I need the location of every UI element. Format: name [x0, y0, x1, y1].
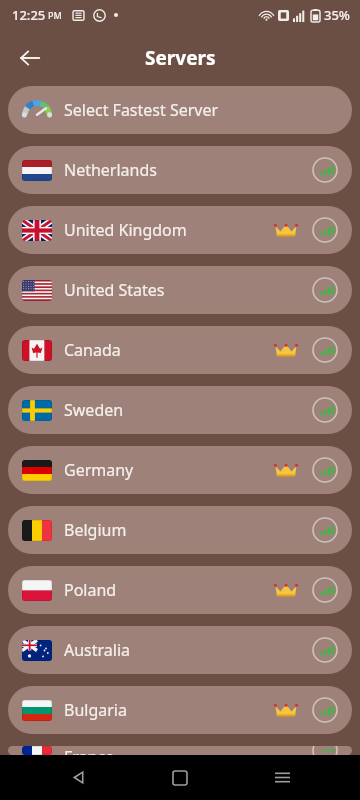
staticText: Sweden — [64, 399, 124, 421]
button[interactable]: Belgium — [8, 506, 352, 554]
staticText: United States — [64, 279, 165, 301]
staticText: United Kingdom — [64, 219, 187, 241]
button[interactable]: Bulgaria — [8, 686, 352, 734]
button[interactable]: Select Fastest Server — [8, 86, 352, 134]
button[interactable]: United States — [8, 266, 352, 314]
staticText: Australia — [64, 639, 131, 661]
staticText: Bulgaria — [64, 699, 127, 721]
button[interactable]: Sweden — [8, 386, 352, 434]
staticText: 35% — [324, 6, 350, 24]
staticText: France — [64, 746, 115, 755]
staticText: Canada — [64, 339, 121, 361]
staticText: Netherlands — [64, 159, 157, 181]
button[interactable]: Back — [8, 36, 52, 80]
staticText: Poland — [64, 579, 117, 601]
staticText: 12:25 — [12, 6, 46, 24]
button[interactable]: United Kingdom — [8, 206, 352, 254]
staticText: Germany — [64, 459, 134, 481]
staticText: Select Fastest Server — [64, 99, 219, 121]
button[interactable]: Poland — [8, 566, 352, 614]
button[interactable]: France — [8, 746, 352, 755]
button[interactable]: Home — [156, 755, 204, 800]
button[interactable]: Germany — [8, 446, 352, 494]
button[interactable]: Recents — [258, 755, 306, 800]
button[interactable]: Back — [54, 755, 102, 800]
button[interactable]: Canada — [8, 326, 352, 374]
button[interactable]: Netherlands — [8, 146, 352, 194]
staticText: PM — [48, 9, 62, 21]
button[interactable]: Australia — [8, 626, 352, 674]
staticText: Belgium — [64, 519, 127, 541]
staticText: Servers — [145, 45, 216, 71]
